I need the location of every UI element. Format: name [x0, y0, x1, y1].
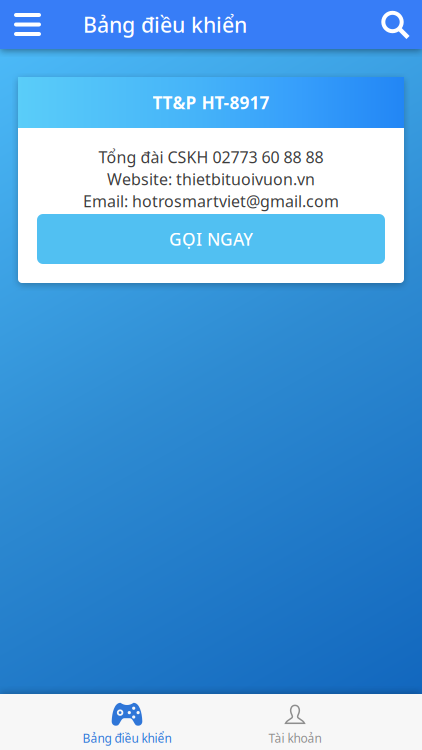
staticText: Tổng đài CSKH 02773 60 88 88 [98, 146, 323, 168]
staticText: Tài khoản [268, 730, 321, 746]
button[interactable]: Search [368, 0, 422, 49]
staticText: Bảng điều khiển [83, 10, 247, 39]
staticText: TT&P HT-8917 [152, 91, 269, 114]
staticText: Bảng điều khiển [82, 730, 171, 746]
staticText: Email: hotrosmartviet@gmail.com [83, 190, 339, 212]
staticText: GỌI NGAY [169, 227, 253, 250]
button[interactable]: GỌI NGAY [37, 214, 385, 264]
button[interactable]: Menu [0, 0, 55, 49]
button[interactable]: Bảng điều khiển [57, 694, 197, 750]
button[interactable]: Tài khoản [225, 694, 365, 750]
staticText: Website: thietbituoivuon.vn [107, 168, 315, 190]
